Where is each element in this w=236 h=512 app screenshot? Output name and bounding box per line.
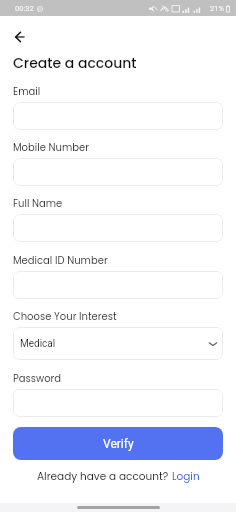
button[interactable] xyxy=(13,271,223,299)
button[interactable] xyxy=(13,389,223,417)
staticText: Email xyxy=(13,84,41,98)
button[interactable]: Verify xyxy=(13,427,223,460)
button[interactable]: Login xyxy=(172,469,200,484)
staticText: Verify xyxy=(103,437,134,451)
button[interactable]: Back xyxy=(12,29,28,45)
staticText: 21% xyxy=(210,4,224,13)
staticText: Medical ID Number xyxy=(13,253,108,267)
button[interactable]: Medical xyxy=(13,327,223,360)
staticText: Create a account xyxy=(13,53,137,73)
staticText: 00:32 xyxy=(15,4,34,13)
button[interactable] xyxy=(13,158,223,186)
staticText: Already have a account? xyxy=(37,469,172,484)
button[interactable] xyxy=(13,214,223,242)
staticText: Medical xyxy=(20,338,56,350)
button[interactable] xyxy=(13,102,223,130)
staticText: Password xyxy=(13,371,62,385)
staticText: Mobile Number xyxy=(13,140,89,154)
staticText: Choose Your Interest xyxy=(13,309,117,323)
staticText: Login xyxy=(172,469,200,484)
staticText: Full Name xyxy=(13,196,63,210)
